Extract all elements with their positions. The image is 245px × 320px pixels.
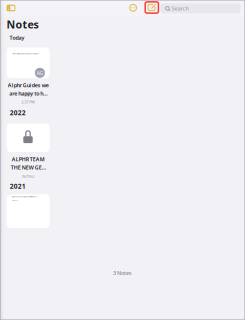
staticText: Search <box>172 5 189 12</box>
button[interactable]: Show Sidebar <box>0 0 15 14</box>
staticText: THE NEW GE… <box>11 164 46 171</box>
staticText: Today <box>9 34 24 41</box>
button[interactable]: Search <box>0 0 80 10</box>
button[interactable]: Alphr Guides we are happy to help you <box>0 47 51 105</box>
staticText: AG <box>36 69 43 76</box>
button[interactable]: ALPHR TEAM <box>0 124 51 179</box>
staticText: GEIF Y0510 E1:00 globasomi Finance <box>12 196 37 198</box>
staticText: 2021 <box>10 182 26 191</box>
button[interactable]: GEIF Y0510 E1:00 globasomi Finance <box>0 194 51 231</box>
button[interactable]: More Options <box>0 0 13 13</box>
staticText: 2:37 PM <box>21 99 35 105</box>
staticText: Finance <box>12 199 18 201</box>
staticText: Alphr Guides we <box>8 82 49 89</box>
staticText: Alphr Guides we are happy to help you <box>12 53 39 55</box>
staticText: 2022 <box>10 108 26 117</box>
staticText: Notes <box>6 17 38 32</box>
staticText: are happy to h… <box>9 90 47 97</box>
button[interactable]: New Note <box>0 0 13 11</box>
staticText: 8/29/22 <box>22 173 34 179</box>
staticText: 3 Notes <box>113 269 132 277</box>
staticText: ALPHR TEAM <box>12 156 45 163</box>
